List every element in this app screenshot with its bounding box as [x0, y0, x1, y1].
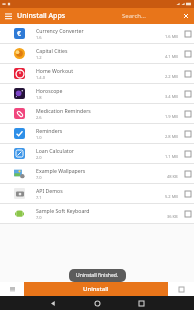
staticText: € — [17, 29, 22, 39]
button[interactable]: Home Workout — [0, 64, 194, 84]
button[interactable]: Select Horoscope — [182, 88, 194, 100]
staticText: 7.1 — [36, 195, 42, 200]
button[interactable]: Home — [75, 296, 119, 310]
staticText: API Demos — [36, 187, 63, 194]
staticText: Medication Reminders — [36, 107, 91, 114]
button[interactable]: Loan Calculator — [0, 144, 194, 164]
staticText: 1.8 — [36, 95, 42, 100]
staticText: Uninstall finished. — [76, 272, 119, 279]
button[interactable]: Sample Soft Keyboard — [0, 204, 194, 224]
button[interactable]: Sort — [0, 282, 24, 296]
button[interactable]: Select Example Wallpapers — [182, 168, 194, 180]
button[interactable]: Back — [31, 296, 75, 310]
button[interactable]: Select Reminders — [182, 128, 194, 140]
staticText: Loan Calculator — [36, 147, 74, 154]
button[interactable]: € — [0, 24, 194, 44]
button[interactable]: Select all — [168, 282, 194, 296]
staticText: 2.6 — [36, 115, 42, 120]
staticText: Home Workout — [36, 67, 74, 74]
staticText: 1.4.0 — [36, 75, 46, 80]
staticText: 4.1 MB — [165, 54, 178, 59]
staticText: Currency Converter — [36, 27, 84, 34]
staticText: 1.6 MB — [165, 34, 178, 39]
staticText: 1.0 — [36, 135, 42, 140]
staticText: Reminders — [36, 127, 63, 134]
button[interactable]: Recents — [119, 296, 163, 310]
button[interactable]: Select Loan Calculator — [182, 148, 194, 160]
button[interactable]: Uninstall — [24, 282, 168, 296]
button[interactable]: Select Medication Reminders — [182, 108, 194, 120]
staticText: 2.8 MB — [165, 134, 178, 139]
staticText: 7.0 — [36, 175, 42, 180]
button[interactable]: Example Wallpapers — [0, 164, 194, 184]
button[interactable]: Reminders — [0, 124, 194, 144]
staticText: 1.6 — [36, 35, 42, 40]
staticText: 5.2 MB — [165, 194, 178, 199]
staticText: Uninstall — [83, 285, 109, 293]
staticText: 2.2 MB — [165, 74, 178, 79]
staticText: 1.1 MB — [165, 154, 178, 159]
button[interactable]: Select API Demos — [182, 188, 194, 200]
staticText: Sample Soft Keyboard — [36, 207, 90, 214]
staticText: 1.9 MB — [165, 114, 178, 119]
staticText: 3.4 MB — [165, 94, 178, 99]
button[interactable]: Select Capital Cities — [182, 48, 194, 60]
staticText: Example Wallpapers — [36, 167, 86, 174]
button[interactable]: Capital Cities — [0, 44, 194, 64]
staticText: Horoscope — [36, 87, 63, 94]
button[interactable]: Close — [178, 8, 194, 24]
button[interactable]: Search... — [120, 12, 148, 20]
staticText: 48 KB — [167, 174, 178, 179]
staticText: Capital Cities — [36, 47, 68, 54]
button[interactable]: Select Sample Soft Keyboard — [182, 208, 194, 220]
button[interactable]: Select Home Workout — [182, 68, 194, 80]
button[interactable]: Medication Reminders — [0, 104, 194, 124]
staticText: 1.2 — [36, 55, 42, 60]
staticText: 7.0 — [36, 215, 42, 220]
staticText: Uninstall Apps — [17, 11, 66, 21]
staticText: 36 KB — [167, 214, 178, 219]
button[interactable]: Menu — [0, 8, 16, 24]
button[interactable]: Horoscope — [0, 84, 194, 104]
button[interactable]: Select Currency Converter — [182, 28, 194, 40]
staticText: 2.0 — [36, 155, 42, 160]
button[interactable]: API Demos — [0, 184, 194, 204]
